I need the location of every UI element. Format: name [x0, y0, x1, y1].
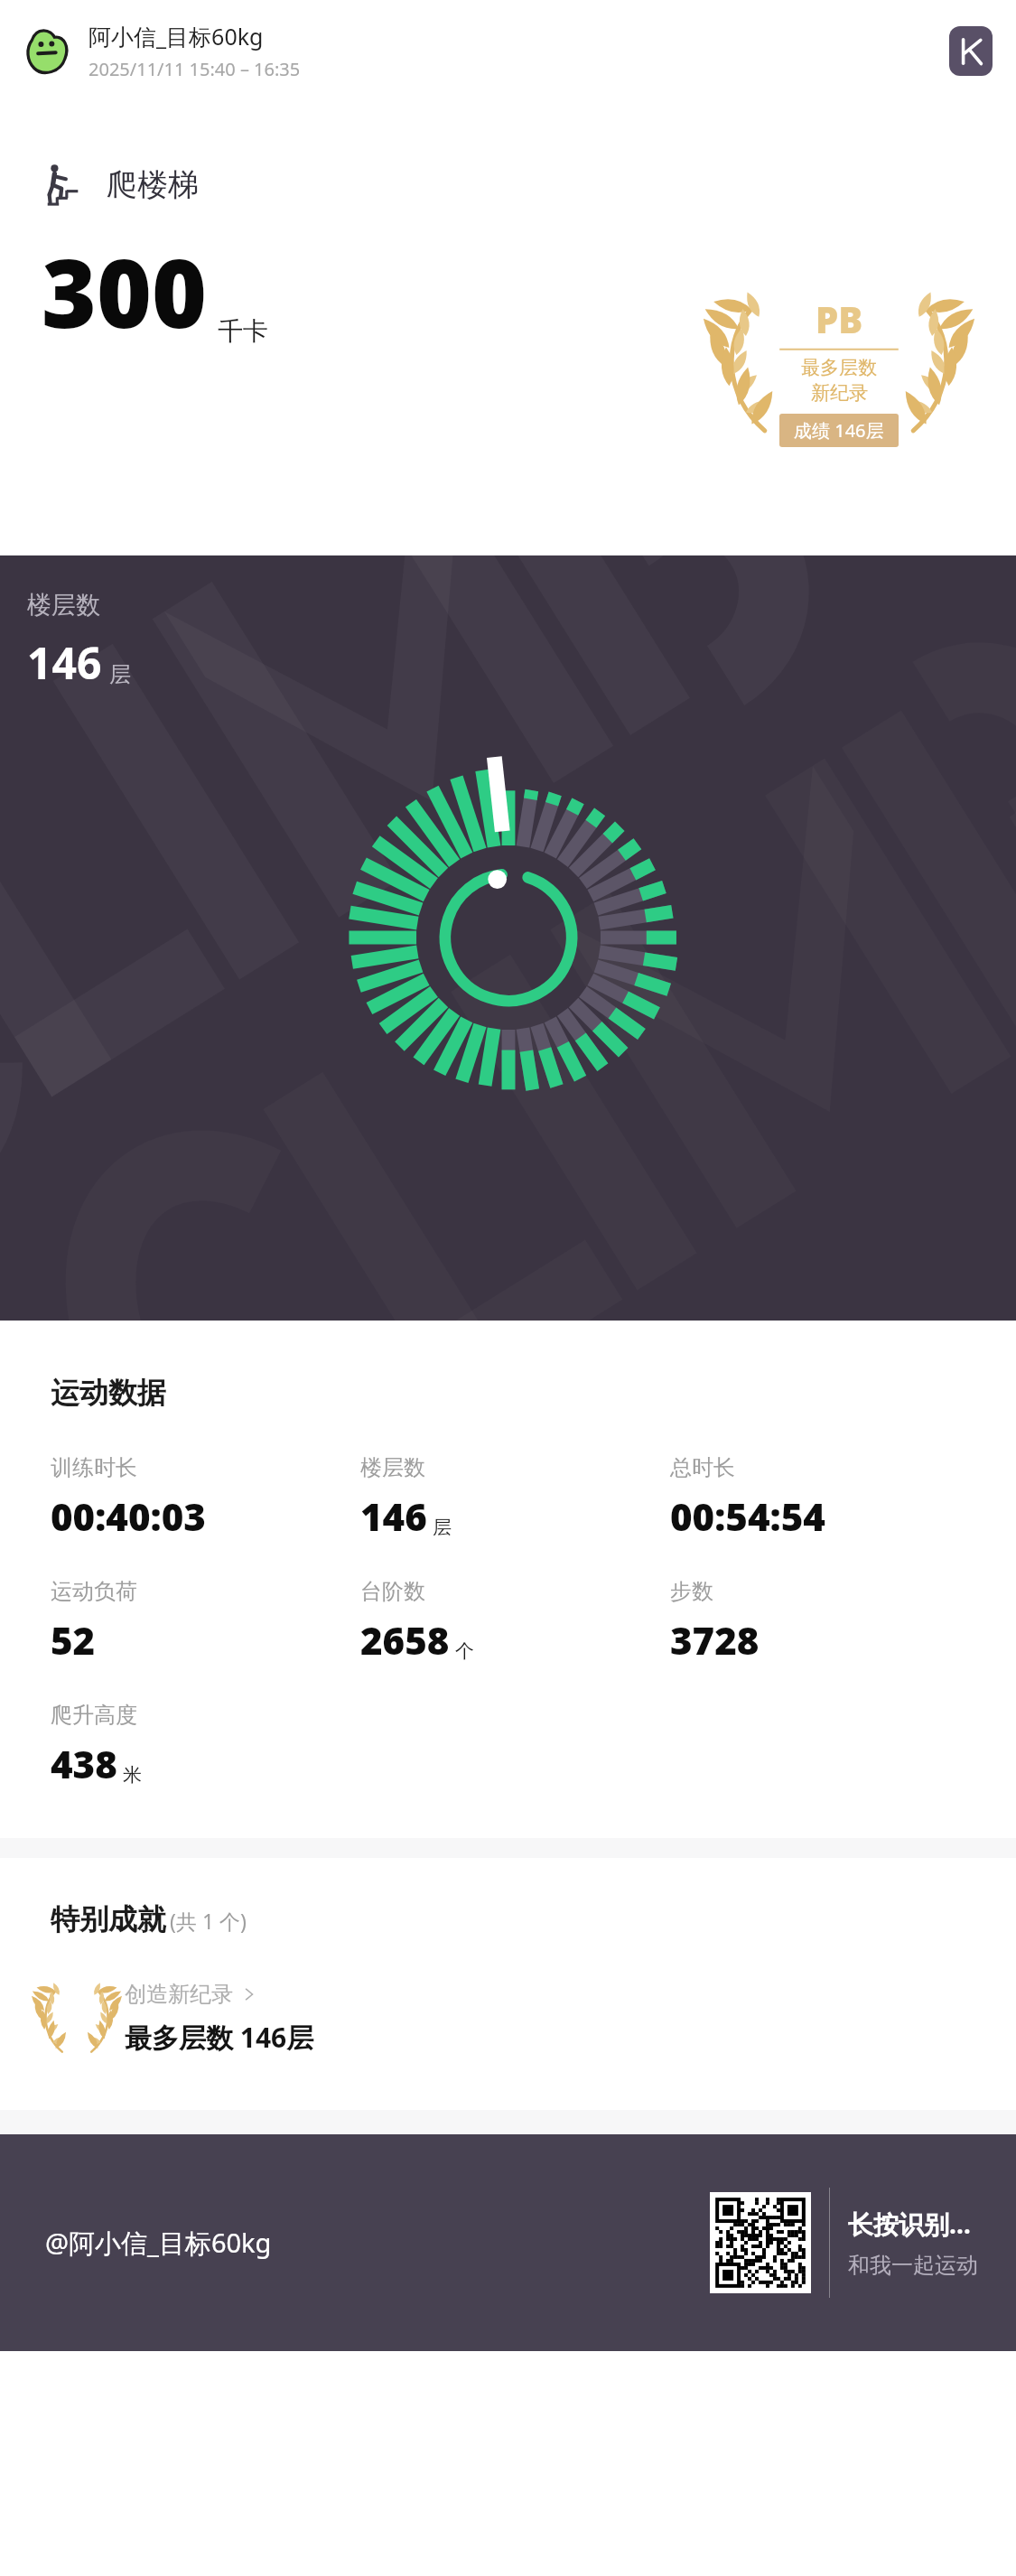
staticText: 步数 — [670, 1578, 713, 1605]
staticText: 层 — [433, 1516, 452, 1539]
staticText: (共 1 个) — [170, 1907, 247, 1935]
staticText: 特别成就 — [51, 1901, 166, 1937]
staticText: 3728 — [670, 1614, 760, 1666]
button[interactable]: Personal best badge — [713, 291, 965, 453]
button[interactable]: Keep logo — [949, 26, 993, 76]
staticText: @阿小信_目标60kg — [45, 2225, 272, 2261]
staticText: 楼层数 — [27, 590, 100, 621]
staticText: 00:54:54 — [670, 1490, 825, 1542]
staticText: 层 — [109, 661, 131, 688]
staticText: 成绩 146层 — [794, 418, 884, 443]
staticText: 创造新纪录 — [125, 1981, 233, 2008]
staticText: 2025/11/11 15:40 – 16:35 — [89, 57, 301, 81]
staticText: PB — [816, 294, 863, 343]
staticText: 2658 — [360, 1614, 450, 1666]
staticText: 最多层数 — [801, 356, 877, 379]
staticText: 438 — [51, 1738, 117, 1789]
staticText: 和我一起运动 — [848, 2252, 978, 2279]
staticText: 52 — [51, 1614, 96, 1666]
staticText: 146 — [360, 1490, 427, 1542]
button[interactable]: 创造新纪录 — [0, 1977, 1016, 2059]
staticText: 米 — [123, 1763, 142, 1787]
staticText: 阿小信_目标60kg — [89, 21, 264, 51]
staticText: 爬楼梯 — [107, 165, 199, 204]
staticText: 台阶数 — [360, 1578, 425, 1605]
staticText: 楼层数 — [360, 1454, 425, 1481]
staticText: 长按识别… — [848, 2207, 971, 2241]
staticText: 千卡 — [218, 315, 268, 347]
staticText: 00:40:03 — [51, 1490, 206, 1542]
staticText: 最多层数 146层 — [125, 2019, 314, 2056]
staticText: 146 — [27, 633, 102, 692]
staticText: 个 — [455, 1639, 474, 1663]
staticText: 爬升高度 — [51, 1702, 137, 1729]
staticText: 运动数据 — [51, 1375, 166, 1411]
staticText: 总时长 — [670, 1454, 735, 1481]
staticText: 300 — [42, 228, 207, 356]
staticText: 训练时长 — [51, 1454, 137, 1481]
staticText: 运动负荷 — [51, 1578, 137, 1605]
staticText: 新纪录 — [811, 381, 868, 405]
